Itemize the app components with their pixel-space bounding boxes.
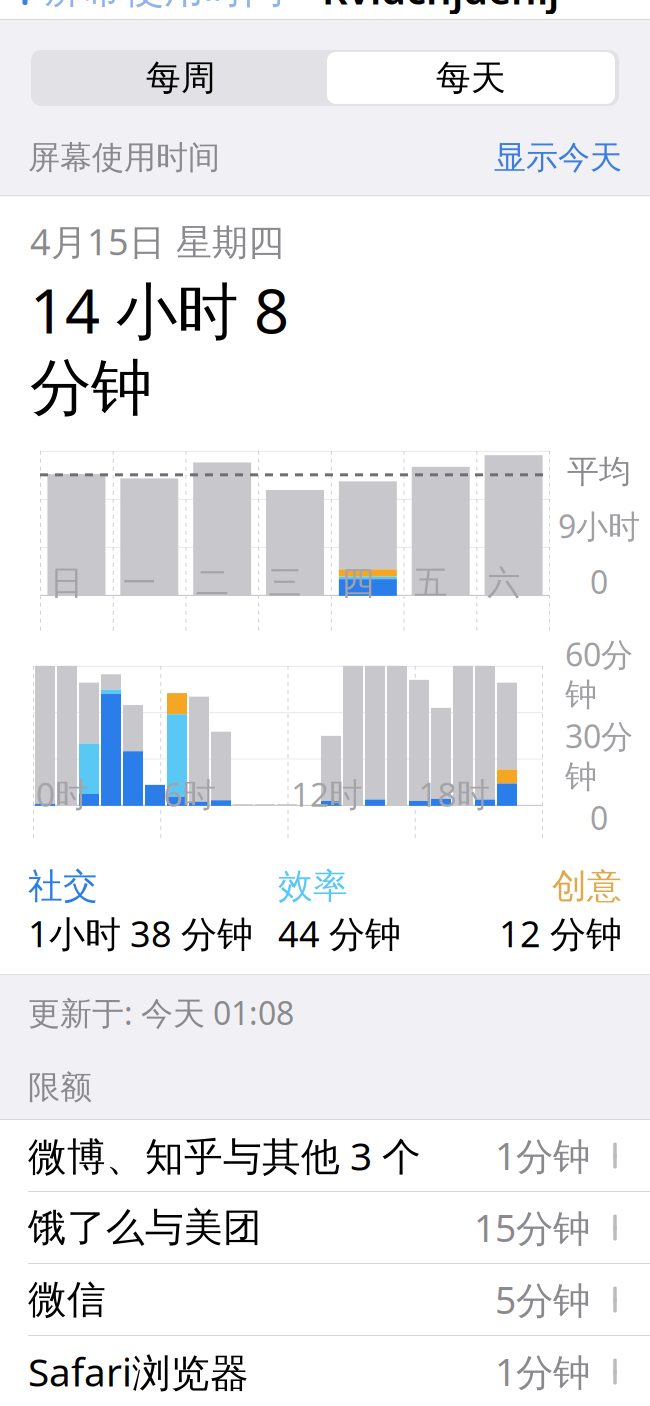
staticText: 效率 [278, 865, 348, 907]
staticText: 15分钟 [474, 1203, 590, 1252]
staticText: Rvidchjdehij [322, 0, 559, 15]
staticText: 创意 [552, 865, 622, 907]
staticText: 屏幕使用时间 [44, 0, 284, 13]
staticText: Safari浏览器 [28, 1346, 249, 1397]
staticText: 44 分钟 [278, 909, 401, 957]
staticText: 12 分钟 [499, 909, 622, 957]
button[interactable]: 每周 [35, 52, 327, 104]
staticText: 18时 [418, 772, 489, 816]
staticText: 日 [50, 562, 83, 603]
staticText: 9小时 [558, 504, 640, 547]
staticText: 0时 [36, 772, 88, 816]
staticText: 4月15日 星期四 [30, 217, 284, 265]
button[interactable]: Safari浏览器 [0, 1336, 650, 1406]
staticText: 三 [268, 562, 301, 603]
button[interactable]: 饿了么与美团 [0, 1192, 650, 1263]
button[interactable]: 微信 [0, 1264, 650, 1335]
staticText: 二 [196, 562, 229, 603]
staticText: 一 [123, 562, 156, 603]
staticText: 每天 [436, 57, 506, 99]
staticText: 微博、知乎与其他 3 个 [28, 1130, 421, 1181]
staticText: 12时 [291, 772, 362, 816]
staticText: 微信 [28, 1276, 106, 1323]
staticText: 5分钟 [495, 1275, 590, 1324]
button[interactable]: 屏幕使用时间 [0, 0, 284, 19]
staticText: 6时 [163, 772, 215, 816]
staticText: 六 [487, 562, 520, 603]
staticText: 五 [414, 562, 447, 603]
button[interactable]: 每天 [327, 52, 615, 104]
staticText: 社交 [28, 865, 98, 907]
staticText: 1分钟 [495, 1131, 590, 1180]
staticText: 每周 [146, 57, 216, 99]
button[interactable]: 显示今天 [494, 134, 622, 181]
staticText: 60分钟 [565, 633, 633, 715]
staticText: 四 [341, 562, 374, 603]
button[interactable]: 微博、知乎与其他 3 个 [0, 1120, 650, 1191]
staticText: 限额 [28, 1068, 92, 1107]
staticText: 0 [590, 796, 608, 839]
staticText: 显示今天 [494, 138, 622, 177]
staticText: 30分钟 [565, 715, 633, 796]
staticText: 屏幕使用时间 [28, 138, 220, 177]
staticText: 0 [590, 560, 608, 603]
staticText: 更新于: 今天 01:08 [28, 991, 294, 1034]
staticText: 1小时 38 分钟 [28, 909, 253, 957]
staticText: 平均 [567, 452, 631, 491]
staticText: 1分钟 [495, 1347, 590, 1396]
staticText: 14 小时 8 分钟 [30, 269, 289, 426]
staticText: 饿了么与美团 [28, 1204, 262, 1251]
